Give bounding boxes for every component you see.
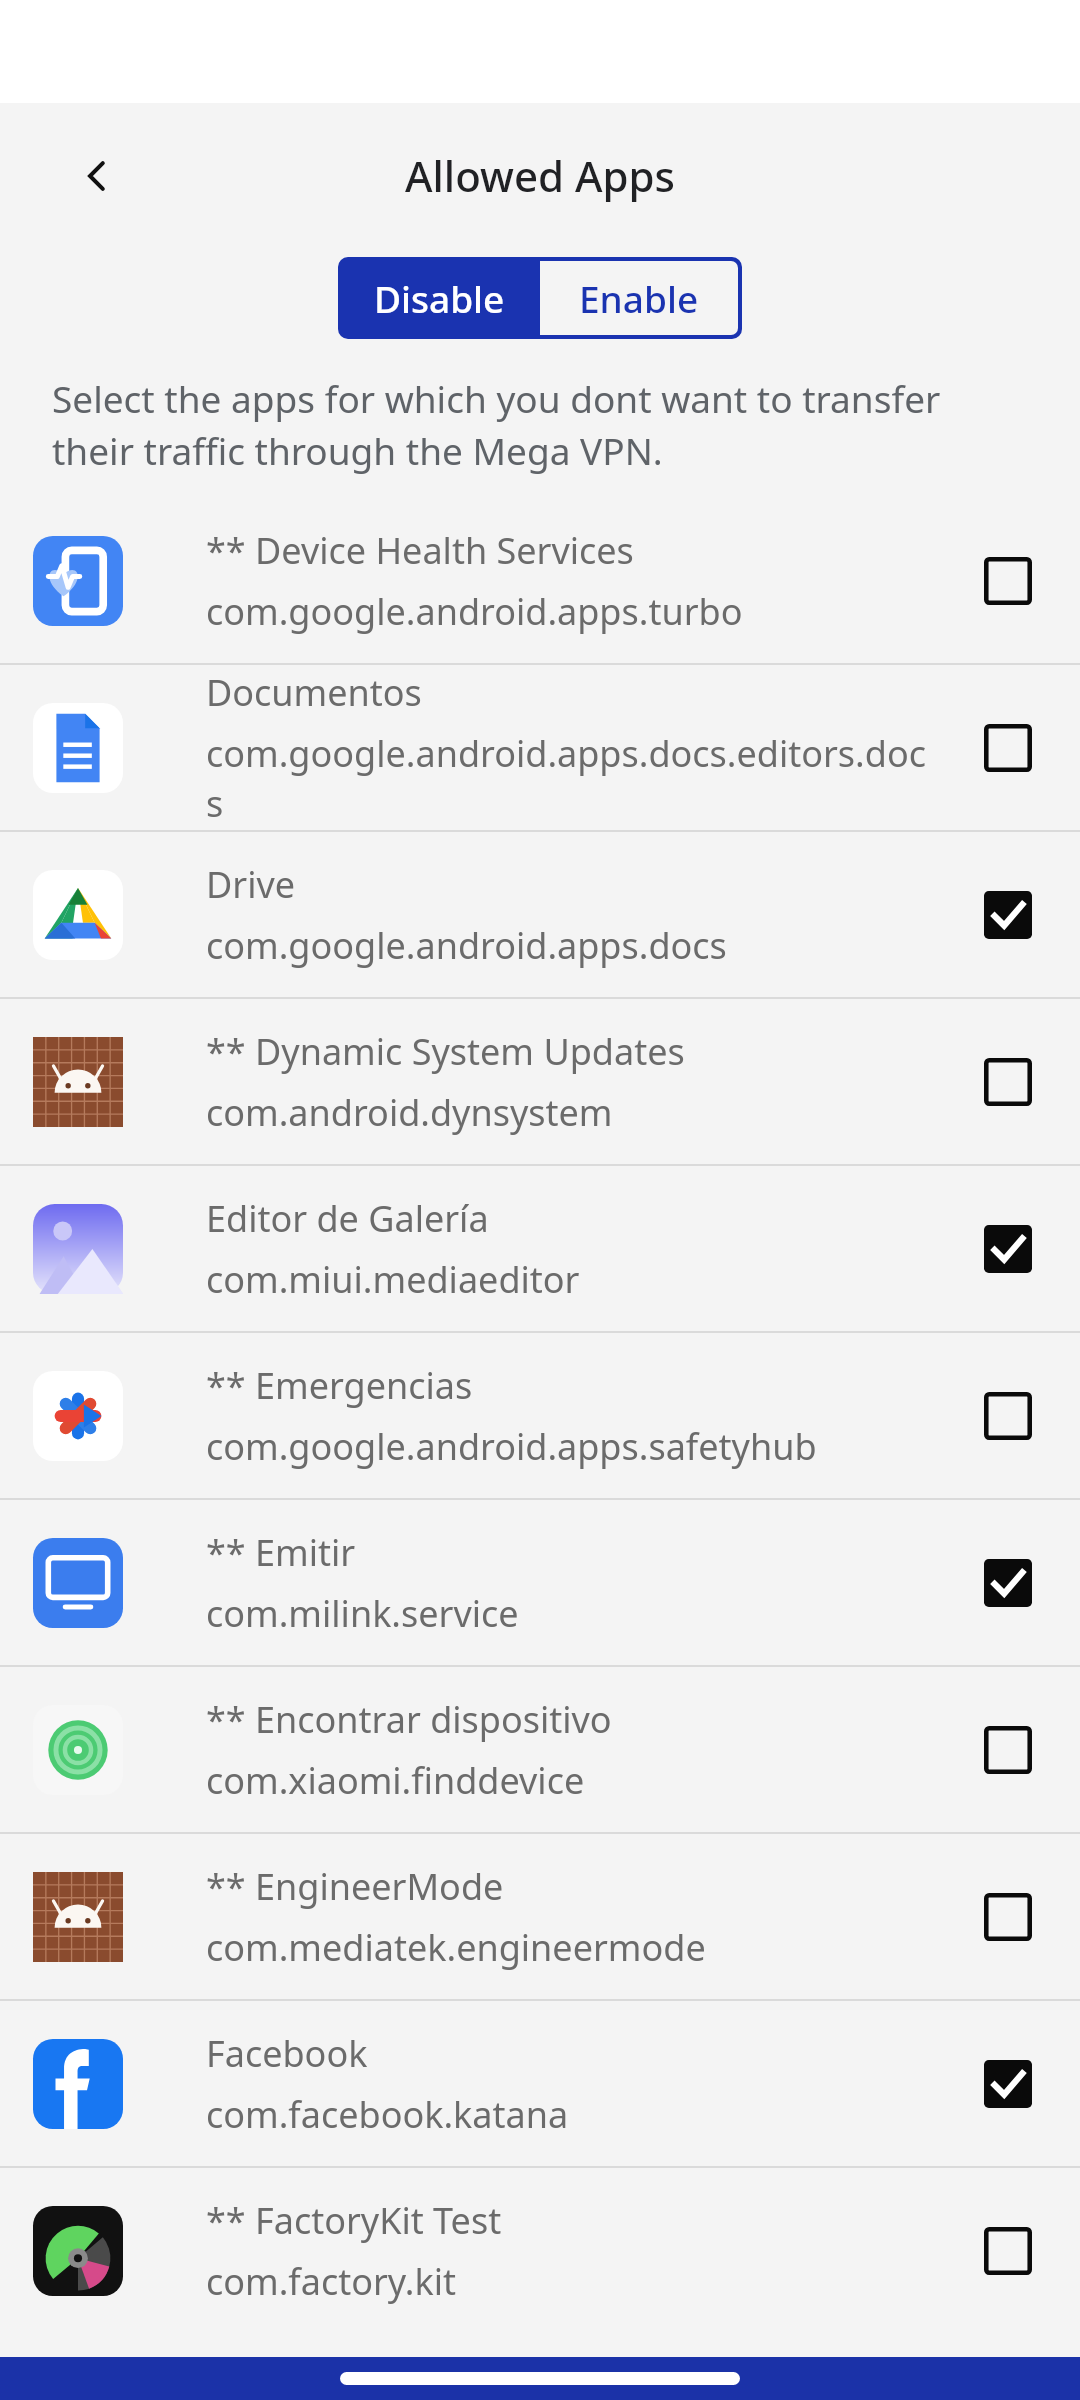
button[interactable]: Unchecked <box>960 1869 1056 1965</box>
button[interactable]: Unchecked <box>960 1034 1056 1130</box>
staticText: ** Emergencias <box>206 1361 473 1410</box>
button[interactable]: Checked <box>960 1535 1056 1631</box>
staticText: com.milink.service <box>206 1589 519 1638</box>
staticText: com.facebook.katana <box>206 2090 569 2139</box>
staticText: Enable <box>579 273 699 323</box>
button[interactable]: Drive <box>0 832 1080 997</box>
button[interactable]: Checked <box>960 1201 1056 1297</box>
staticText: Documentos <box>206 668 422 717</box>
staticText: com.google.android.apps.safetyhub <box>206 1422 817 1471</box>
staticText: ** Emitir <box>206 1528 356 1577</box>
button[interactable]: ** Emergencias <box>0 1333 1080 1498</box>
button[interactable]: ** Device Health Services <box>0 498 1080 663</box>
staticText: com.google.android.apps.docs.editors.doc… <box>206 729 942 828</box>
button[interactable]: ** FactoryKit Test <box>0 2168 1080 2333</box>
button[interactable]: ** Dynamic System Updates <box>0 999 1080 1164</box>
staticText: ** EngineerMode <box>206 1862 504 1911</box>
button[interactable]: ** Emitir <box>0 1500 1080 1665</box>
button[interactable]: Unchecked <box>960 700 1056 796</box>
button[interactable]: ** Encontrar dispositivo <box>0 1667 1080 1832</box>
button[interactable]: Checked <box>960 867 1056 963</box>
staticText: com.factory.kit <box>206 2257 456 2306</box>
staticText: com.miui.mediaeditor <box>206 1255 580 1304</box>
button[interactable]: Unchecked <box>960 2203 1056 2299</box>
button[interactable]: Enable <box>540 261 738 335</box>
staticText: com.google.android.apps.docs <box>206 921 727 970</box>
staticText: com.android.dynsystem <box>206 1088 613 1137</box>
button[interactable]: Back <box>70 148 126 204</box>
staticText: Drive <box>206 860 296 909</box>
staticText: com.mediatek.engineermode <box>206 1923 706 1972</box>
button[interactable]: Editor de Galería <box>0 1166 1080 1331</box>
staticText: Allowed Apps <box>405 147 675 204</box>
staticText: com.xiaomi.finddevice <box>206 1756 585 1805</box>
staticText: ** Dynamic System Updates <box>206 1027 685 1076</box>
staticText: Select the apps for which you dont want … <box>52 373 1028 476</box>
staticText: ** Encontrar dispositivo <box>206 1695 612 1744</box>
button[interactable]: Unchecked <box>960 533 1056 629</box>
button[interactable]: Unchecked <box>960 1702 1056 1798</box>
staticText: Facebook <box>206 2029 368 2078</box>
button[interactable]: ** EngineerMode <box>0 1834 1080 1999</box>
button[interactable]: Facebook <box>0 2001 1080 2166</box>
button[interactable]: Disable <box>338 257 540 339</box>
staticText: ** FactoryKit Test <box>206 2196 502 2245</box>
button[interactable]: Documentos <box>0 665 1080 830</box>
staticText: ** Device Health Services <box>206 526 634 575</box>
staticText: Editor de Galería <box>206 1194 489 1243</box>
staticText: Disable <box>374 273 505 323</box>
staticText: com.google.android.apps.turbo <box>206 587 743 636</box>
button[interactable]: Unchecked <box>960 1368 1056 1464</box>
button[interactable]: Checked <box>960 2036 1056 2132</box>
